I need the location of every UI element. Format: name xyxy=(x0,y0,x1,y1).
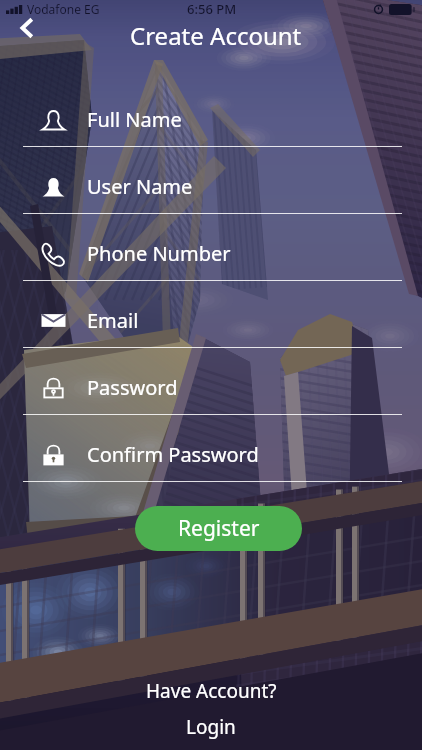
staticText: Have Account? xyxy=(146,678,277,704)
button[interactable]: Register xyxy=(135,506,302,551)
button[interactable]: Login xyxy=(0,714,422,740)
staticText: Vodafone EG xyxy=(27,1,100,17)
staticText: Phone Number xyxy=(87,240,231,267)
button[interactable]: Confirm Password xyxy=(0,415,422,482)
staticText: Email xyxy=(87,307,139,334)
staticText: Register xyxy=(178,514,260,543)
button[interactable]: Full Name xyxy=(0,80,422,147)
button[interactable]: Phone Number xyxy=(0,214,422,281)
staticText: Password xyxy=(87,374,178,401)
button[interactable]: Password xyxy=(0,348,422,415)
button[interactable]: Have Account? xyxy=(0,678,422,704)
staticText: Confirm Password xyxy=(87,441,259,468)
button[interactable]: Email xyxy=(0,281,422,348)
staticText: Create Account xyxy=(130,19,302,52)
staticText: User Name xyxy=(87,173,193,200)
staticText: 6:56 PM xyxy=(187,0,237,18)
button[interactable]: Back xyxy=(21,17,33,39)
staticText: Full Name xyxy=(87,106,182,133)
staticText: Login xyxy=(186,714,236,740)
button[interactable]: User Name xyxy=(0,147,422,214)
